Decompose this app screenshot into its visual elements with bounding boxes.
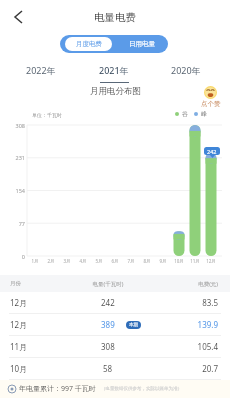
staticText: 58 — [103, 363, 113, 374]
button[interactable]: 2022年 — [21, 64, 61, 83]
staticText: 77 — [0, 220, 25, 227]
staticText: 231 — [0, 154, 25, 161]
staticText: 8月 — [139, 258, 155, 264]
staticText: 电量电费 — [94, 11, 136, 24]
staticText: 12月 — [10, 319, 28, 330]
staticText: 11月 — [10, 341, 28, 352]
staticText: 12月 — [10, 297, 28, 308]
staticText: 峰 — [201, 110, 207, 118]
button[interactable]: Back — [8, 6, 29, 27]
button[interactable]: 点个赞 — [199, 86, 222, 108]
staticText: （电量数据仅供参考，实际以账单为准） — [101, 386, 182, 392]
staticText: 308 — [0, 122, 25, 129]
staticText: 1月 — [27, 258, 43, 264]
staticText: 154 — [0, 187, 25, 194]
button[interactable]: 11月 — [0, 336, 230, 358]
staticText: 242 — [207, 148, 217, 155]
staticText: 83.5 — [178, 297, 218, 308]
button[interactable]: 12月 — [0, 292, 230, 314]
staticText: 0 — [0, 253, 25, 260]
button[interactable]: 月度电费 — [65, 37, 112, 51]
button[interactable]: 2020年 — [166, 64, 206, 83]
staticText: 10月 — [171, 258, 187, 264]
staticText: 2月 — [43, 258, 59, 264]
staticText: 12月 — [203, 258, 219, 264]
staticText: 月用电分布图 — [90, 86, 141, 97]
staticText: 5月 — [91, 258, 107, 264]
staticText: 139.9 — [178, 319, 218, 330]
staticText: 2022年 — [26, 64, 56, 76]
staticText: 389 — [101, 319, 115, 330]
staticText: 年电量累计：997 千瓦时 — [19, 384, 96, 394]
staticText: 日用电量 — [129, 40, 155, 48]
staticText: 月份 — [10, 280, 21, 287]
staticText: 308 — [101, 341, 115, 352]
staticText: 2021年 — [99, 64, 129, 76]
staticText: 4月 — [75, 258, 91, 264]
staticText: 105.4 — [178, 341, 218, 352]
staticText: 7月 — [123, 258, 139, 264]
button[interactable]: 10月 — [0, 358, 230, 380]
staticText: 谷 — [182, 110, 188, 118]
staticText: 2020年 — [171, 64, 201, 76]
staticText: 电费(元) — [178, 280, 218, 288]
staticText: 20.7 — [178, 363, 218, 374]
staticText: 11月 — [187, 258, 203, 264]
button[interactable]: 2021年 — [94, 64, 134, 83]
staticText: 3月 — [59, 258, 75, 264]
staticText: 点个赞 — [201, 100, 221, 108]
staticText: 本期 — [129, 322, 138, 328]
staticText: 242 — [101, 297, 115, 308]
staticText: 10月 — [10, 363, 28, 374]
staticText: 6月 — [107, 258, 123, 264]
button[interactable]: 12月 — [0, 314, 230, 336]
staticText: 9月 — [155, 258, 171, 264]
button[interactable]: 日用电量 — [116, 35, 168, 53]
staticText: 单位：千瓦时 — [32, 112, 62, 118]
staticText: 月度电费 — [76, 40, 102, 48]
staticText: 电量(千瓦时) — [84, 280, 132, 288]
